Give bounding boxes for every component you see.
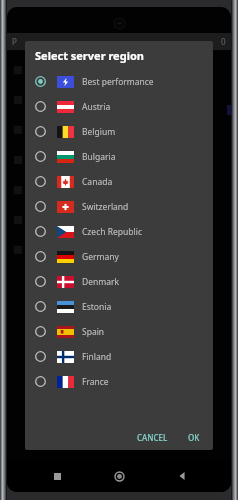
staticText: France [82,376,109,388]
staticText: CANCEL [137,432,168,443]
button[interactable]: Bulgaria [27,144,211,169]
button[interactable]: OK [183,429,205,446]
button[interactable]: Spain [27,319,211,344]
staticText: Austria [82,101,111,113]
staticText: Denmark [82,276,120,288]
staticText: Spain [82,326,105,338]
button[interactable]: Back [169,463,195,489]
button[interactable]: Best performance [27,69,211,94]
staticText: Select server region [35,48,144,63]
button[interactable]: Home [106,463,132,489]
staticText: Bulgaria [82,151,116,163]
button[interactable]: Germany [27,244,211,269]
button[interactable]: Belgium [27,119,211,144]
staticText: Germany [82,251,119,263]
button[interactable]: France [27,369,211,394]
staticText: Best performance [82,76,154,88]
button[interactable]: Estonia [27,294,211,319]
button[interactable]: Switzerland [27,194,211,219]
staticText: Switzerland [82,201,129,213]
button[interactable]: CANCEL [132,429,173,446]
staticText: Belgium [82,126,116,138]
staticText: Canada [82,176,113,188]
staticText: P [12,36,17,47]
staticText: Finland [82,351,112,363]
button[interactable]: Canada [27,169,211,194]
button[interactable]: Recent apps [44,463,70,489]
staticText: Czech Republic [82,226,142,238]
button[interactable]: Denmark [27,269,211,294]
button[interactable]: Finland [27,344,211,369]
button[interactable]: Austria [27,94,211,119]
button[interactable]: Czech Republic [27,219,211,244]
staticText: Estonia [82,301,112,313]
staticText: 0 [221,36,226,47]
staticText: OK [188,432,200,443]
